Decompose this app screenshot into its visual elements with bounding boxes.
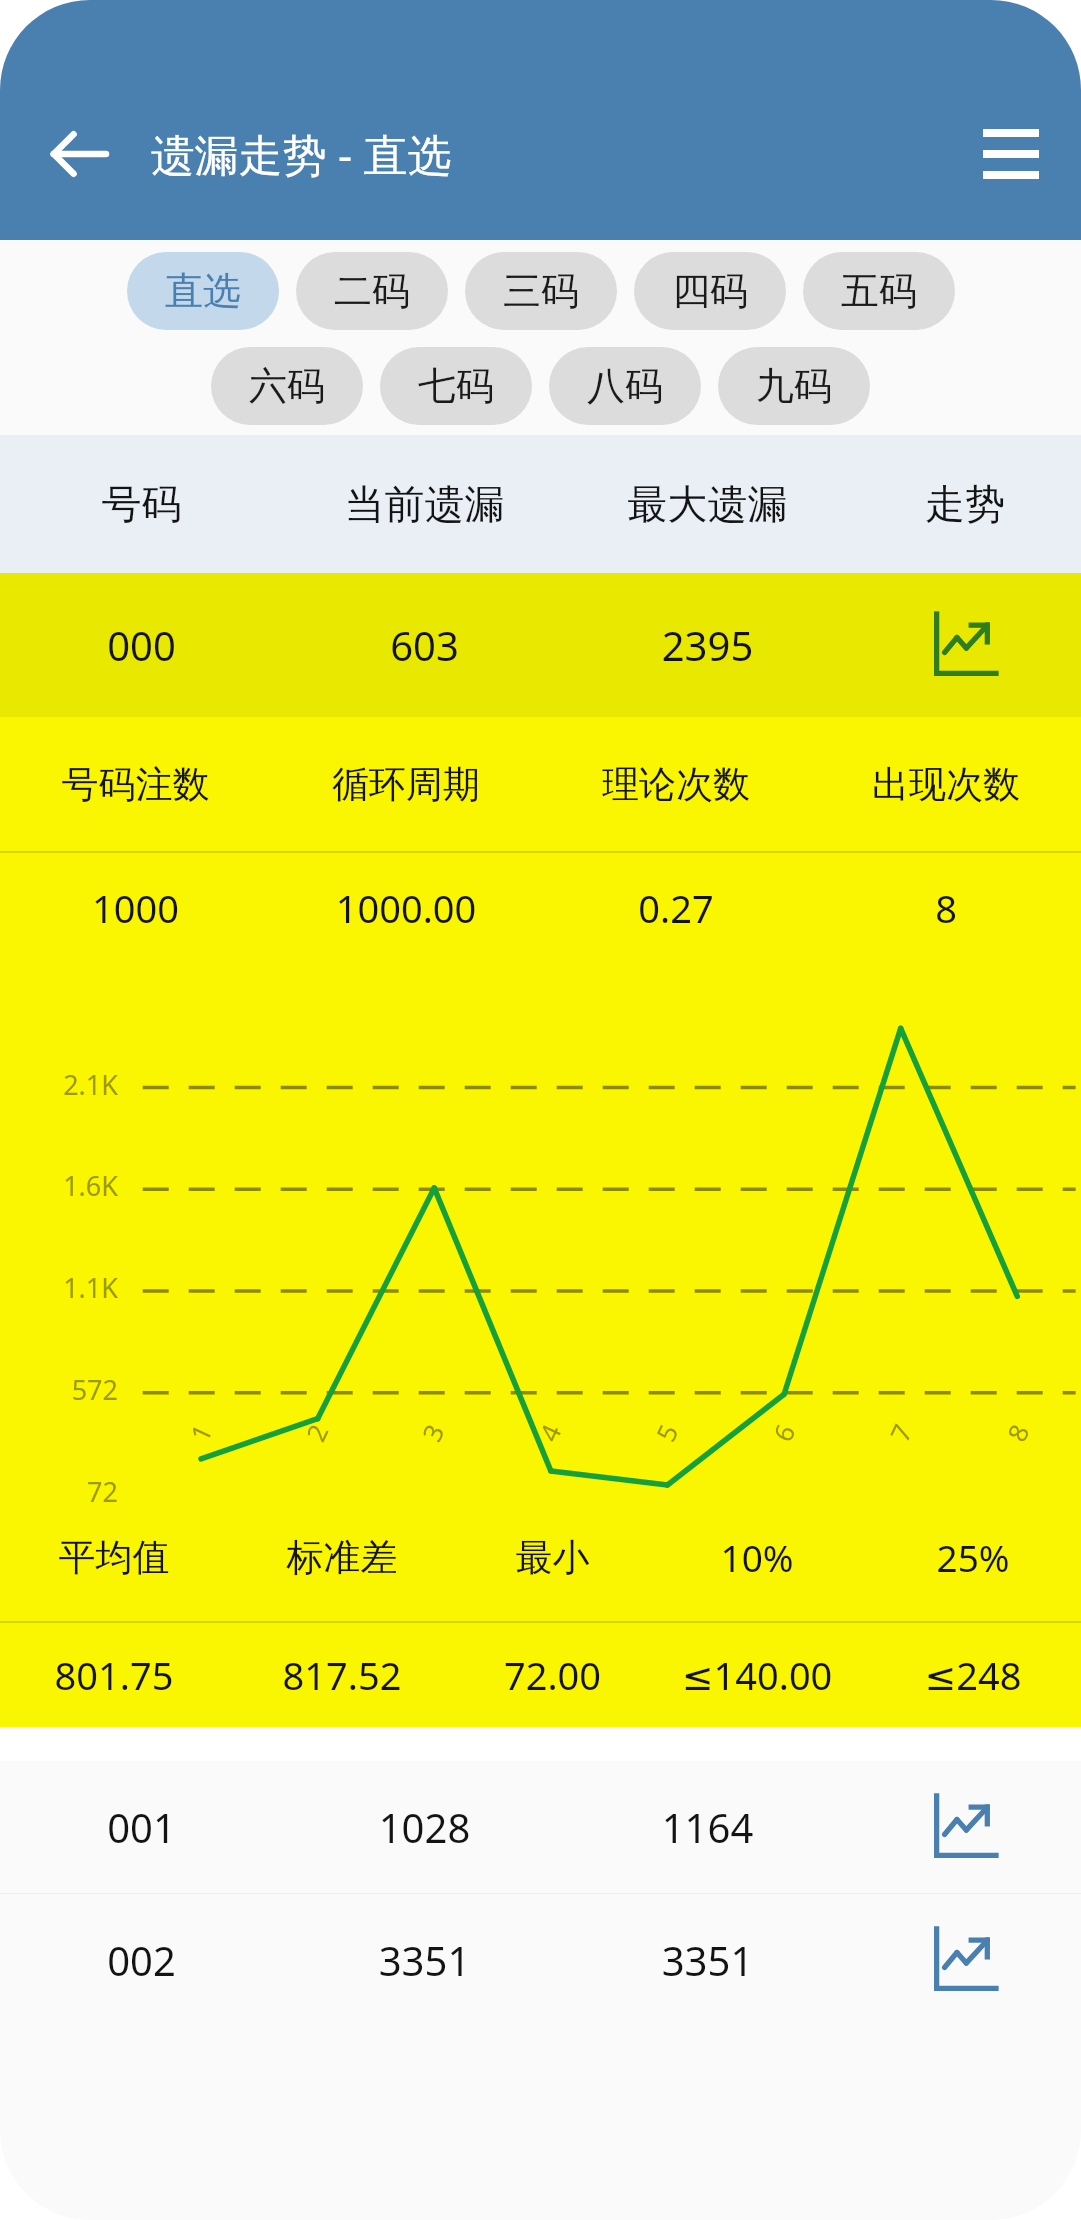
button[interactable]: Menu [963, 106, 1059, 202]
staticText: ≤140.00 [649, 1649, 865, 1701]
staticText: 遗漏走势 - 直选 [150, 124, 452, 184]
staticText: 最小 [456, 1534, 649, 1581]
staticText: 当前遗漏 [283, 479, 566, 529]
button[interactable]: 九码 [718, 347, 870, 425]
staticText: 理论次数 [541, 761, 811, 808]
button[interactable]: 三码 [465, 252, 617, 330]
staticText: 走势 [849, 479, 1081, 529]
button[interactable]: 二码 [296, 252, 448, 330]
staticText: ≤248 [865, 1649, 1081, 1701]
staticText: 1.1K [0, 1269, 118, 1306]
staticText: 72 [0, 1473, 118, 1510]
staticText: 1164 [566, 1800, 849, 1854]
staticText: 572 [0, 1371, 118, 1408]
staticText: 6 [764, 1418, 803, 1447]
staticText: 四码 [672, 267, 748, 315]
staticText: 3351 [283, 1933, 566, 1987]
staticText: 000 [0, 618, 283, 672]
button[interactable]: 八码 [549, 347, 701, 425]
button[interactable]: Trend chart [928, 1923, 1002, 1997]
staticText: 九码 [756, 362, 832, 410]
button[interactable]: Back [34, 109, 124, 199]
staticText: 801.75 [0, 1649, 228, 1701]
staticText: 603 [283, 618, 566, 672]
staticText: 直选 [165, 267, 241, 315]
staticText: 1.6K [0, 1167, 118, 1204]
button[interactable]: 000 [0, 573, 1081, 717]
staticText: 8 [811, 882, 1081, 934]
staticText: 六码 [249, 362, 325, 410]
staticText: 8 [998, 1418, 1037, 1447]
staticText: 0.27 [541, 882, 811, 934]
staticText: 最大遗漏 [566, 479, 849, 529]
staticText: 1028 [283, 1800, 566, 1854]
staticText: 10% [649, 1532, 865, 1582]
staticText: 3351 [566, 1933, 849, 1987]
button[interactable]: 五码 [803, 252, 955, 330]
button[interactable]: 四码 [634, 252, 786, 330]
staticText: 八码 [587, 362, 663, 410]
staticText: 标准差 [228, 1534, 456, 1581]
button[interactable]: 直选 [127, 252, 279, 330]
staticText: 1 [181, 1418, 220, 1447]
staticText: 号码 [0, 479, 283, 529]
staticText: 出现次数 [811, 761, 1081, 808]
staticText: 七码 [418, 362, 494, 410]
button[interactable]: Trend chart [928, 608, 1002, 682]
staticText: 002 [0, 1933, 283, 1987]
staticText: 三码 [503, 267, 579, 315]
staticText: 001 [0, 1800, 283, 1854]
staticText: 1000.00 [271, 882, 541, 934]
staticText: 817.52 [228, 1649, 456, 1701]
staticText: 循环周期 [271, 761, 541, 808]
staticText: 25% [865, 1532, 1081, 1582]
button[interactable]: 七码 [380, 347, 532, 425]
button[interactable]: Trend chart [928, 1790, 1002, 1864]
button[interactable]: 002 [0, 1894, 1081, 2026]
staticText: 号码注数 [0, 761, 271, 808]
staticText: 4 [530, 1418, 569, 1447]
staticText: 2 [297, 1418, 336, 1447]
button[interactable]: 六码 [211, 347, 363, 425]
staticText: 3 [413, 1418, 452, 1447]
staticText: 72.00 [456, 1649, 649, 1701]
staticText: 1000 [0, 882, 271, 934]
staticText: 二码 [334, 267, 410, 315]
button[interactable]: 001 [0, 1761, 1081, 1893]
staticText: 7 [881, 1418, 920, 1447]
staticText: 平均值 [0, 1534, 228, 1581]
staticText: 5 [647, 1418, 686, 1447]
staticText: 五码 [841, 267, 917, 315]
staticText: 2395 [566, 618, 849, 672]
staticText: 2.1K [0, 1066, 118, 1103]
